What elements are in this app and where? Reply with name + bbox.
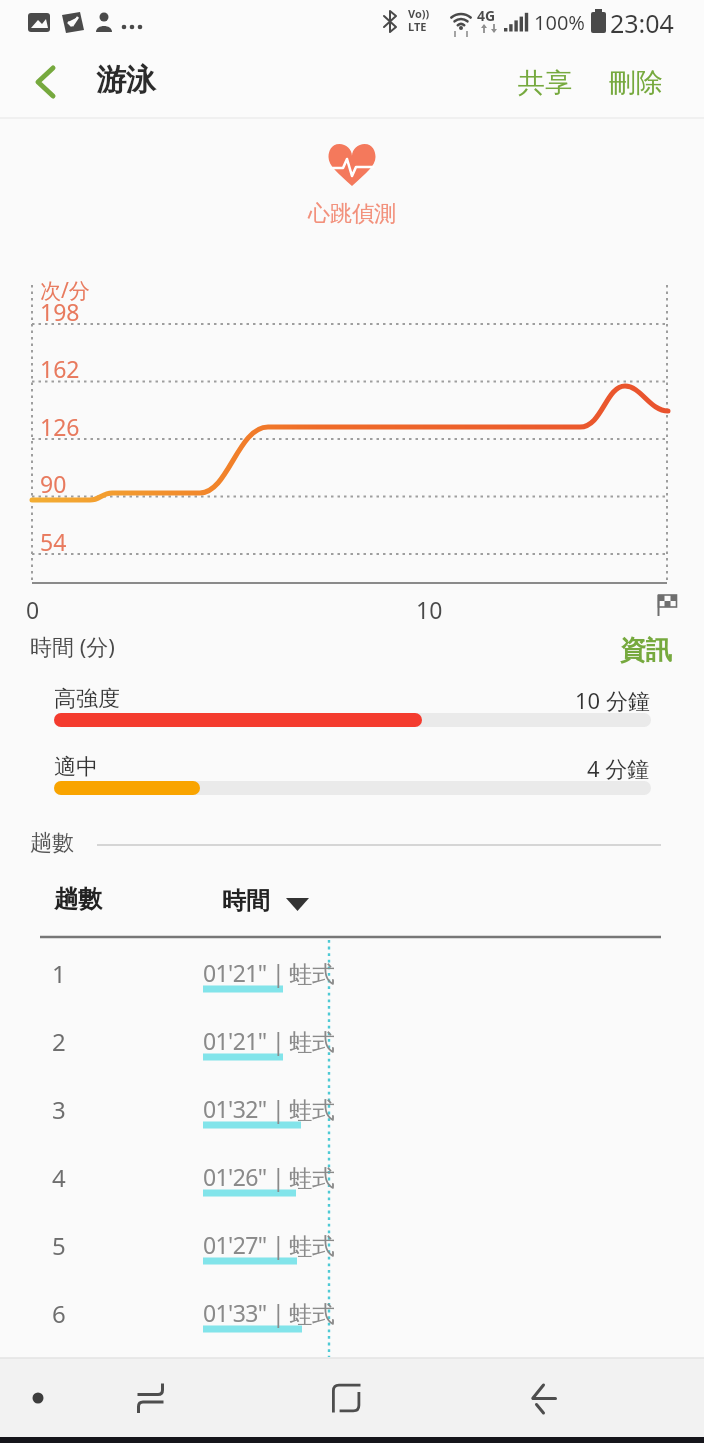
staticText: 162 <box>40 353 80 384</box>
staticText: 54 <box>40 526 67 557</box>
button[interactable] <box>110 1360 190 1436</box>
staticText: 趟數 <box>54 884 102 914</box>
staticText: 趟數 <box>30 829 74 857</box>
staticText: 適中 <box>54 753 98 781</box>
staticText: 時間 (分) <box>30 631 115 661</box>
staticText: 共享 <box>518 66 572 100</box>
button[interactable]: 共享 <box>505 58 585 108</box>
staticText: 4 分鐘 <box>587 753 650 783</box>
staticText: 10 分鐘 <box>575 685 650 715</box>
staticText: 資訊 <box>620 634 672 667</box>
staticText: 23:04 <box>610 6 674 40</box>
staticText: 01'33" | 蛙式 <box>203 1297 335 1328</box>
staticText: 126 <box>40 411 80 442</box>
staticText: 時間 <box>222 886 270 916</box>
button[interactable] <box>498 1360 578 1436</box>
staticText: 01'27" | 蛙式 <box>203 1229 335 1260</box>
staticText: 高強度 <box>54 685 120 713</box>
staticText: 刪除 <box>609 66 663 100</box>
staticText: 01'26" | 蛙式 <box>203 1161 335 1192</box>
staticText: 5 <box>52 1229 66 1262</box>
staticText: 4G <box>477 6 496 25</box>
button[interactable] <box>306 1360 386 1436</box>
button[interactable]: 時間 <box>210 880 330 924</box>
staticText: 90 <box>40 468 67 499</box>
staticText: 6 <box>52 1297 66 1330</box>
staticText: LTE <box>408 19 427 34</box>
staticText: 心跳偵測 <box>308 200 396 228</box>
staticText: 01'21" | 蛙式 <box>203 957 335 988</box>
staticText: 2 <box>52 1025 66 1058</box>
staticText: 次/分 <box>40 276 90 305</box>
staticText: 10 <box>416 594 443 625</box>
staticText: 01'32" | 蛙式 <box>203 1093 335 1124</box>
staticText: 3 <box>52 1093 66 1126</box>
staticText: 100% <box>534 9 585 36</box>
staticText: Vo)) <box>408 6 430 21</box>
staticText: 游泳 <box>96 61 156 99</box>
staticText: 1 <box>52 957 66 990</box>
staticText: 0 <box>26 594 40 625</box>
button[interactable] <box>24 52 76 110</box>
staticText: 4 <box>52 1161 66 1194</box>
staticText: 198 <box>40 296 80 327</box>
button[interactable]: 資訊 <box>600 630 680 670</box>
button[interactable]: 刪除 <box>596 58 676 108</box>
staticText: 01'21" | 蛙式 <box>203 1025 335 1056</box>
